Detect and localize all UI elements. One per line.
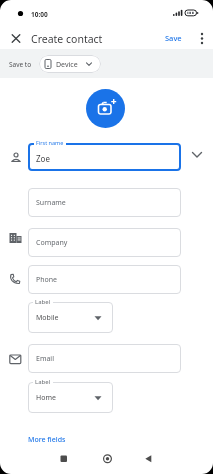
button[interactable]: Phone [28,265,181,294]
staticText: Create contact [31,32,103,46]
button[interactable]: More fields [28,435,66,445]
staticText: Mobile [36,313,59,323]
staticText: Device [56,60,78,70]
button[interactable]: Email [28,344,181,373]
button[interactable]: Zoe [28,143,181,171]
staticText: Home [36,393,56,403]
button[interactable]: Save [165,33,182,43]
staticText: First name [36,139,64,146]
staticText: Phone [36,275,58,285]
button[interactable] [101,452,115,466]
staticText: Save to [9,60,32,69]
button[interactable] [57,452,71,466]
button[interactable]: Company [28,228,181,257]
staticText: Company [36,238,68,248]
button[interactable] [191,149,203,161]
staticText: More fields [28,435,66,445]
staticText: Zoe [36,153,50,164]
button[interactable] [142,452,156,466]
staticText: Save [165,33,182,43]
staticText: Email [36,354,54,364]
button[interactable]: Mobile [28,302,113,333]
staticText: Surname [36,198,66,208]
staticText: Label [35,378,51,386]
button[interactable]: Device [39,55,101,73]
button[interactable]: Surname [28,188,181,217]
button[interactable] [8,30,24,46]
staticText: 10:00 [31,10,48,19]
button[interactable]: Home [28,382,113,413]
button[interactable] [196,32,208,44]
staticText: Label [35,298,51,306]
button[interactable] [86,89,125,128]
